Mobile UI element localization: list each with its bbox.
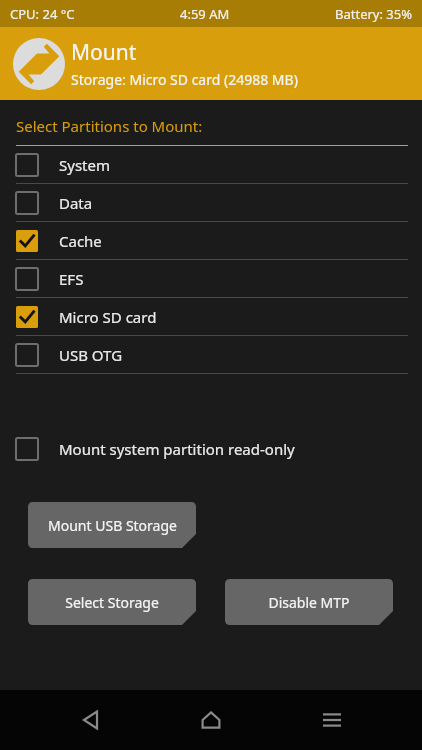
button[interactable]: USB OTG (0, 336, 422, 374)
staticText: Mount system partition read-only (59, 439, 295, 459)
staticText: Cache (59, 231, 102, 251)
staticText: Micro SD card (59, 307, 157, 327)
staticText: Mount (71, 38, 137, 67)
staticText: Select Storage (65, 593, 159, 612)
staticText: Select Partitions to Mount: (16, 116, 203, 136)
staticText: Disable MTP (268, 593, 350, 612)
staticText: CPU: 24 °C (10, 5, 75, 23)
button[interactable]: Back (61, 690, 121, 750)
staticText: Storage: Micro SD card (24988 MB) (71, 70, 298, 89)
button[interactable]: System (0, 146, 422, 184)
button[interactable]: Data (0, 184, 422, 222)
button[interactable]: Micro SD card (0, 298, 422, 336)
button[interactable]: Cache (0, 222, 422, 260)
button[interactable]: Mount system partition read-only (0, 429, 422, 469)
staticText: USB OTG (59, 345, 123, 365)
staticText: EFS (59, 269, 84, 289)
button[interactable]: Home (181, 690, 241, 750)
button[interactable]: Recent apps (302, 690, 362, 750)
button[interactable]: Mount USB Storage (28, 502, 196, 548)
button[interactable]: Disable MTP (225, 579, 393, 625)
button[interactable]: EFS (0, 260, 422, 298)
staticText: Battery: 35% (335, 5, 412, 23)
button[interactable]: Select Storage (28, 579, 196, 625)
staticText: Data (59, 193, 93, 213)
staticText: Mount USB Storage (48, 516, 177, 535)
staticText: System (59, 155, 110, 175)
staticText: 4:59 AM (180, 5, 230, 23)
